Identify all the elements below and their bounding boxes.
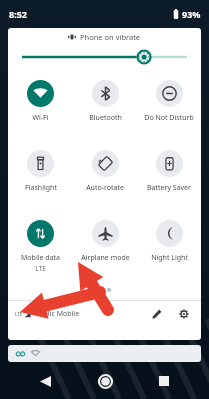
button[interactable]: LTE <box>15 309 80 319</box>
staticText: Do Not Disturb <box>144 113 194 123</box>
button[interactable]: Night Light <box>137 212 201 282</box>
staticText: LTE <box>35 264 46 273</box>
staticText: Auto-rotate <box>86 183 124 193</box>
staticText: 93% <box>182 8 201 20</box>
staticText: Bluetooth <box>89 113 122 123</box>
button[interactable]: Bluetooth <box>73 72 137 142</box>
staticText: Airplane mode <box>81 253 130 263</box>
staticText: Phone on vibrate <box>80 32 141 42</box>
staticText: Mobile data <box>21 253 60 263</box>
staticText: Flashlight <box>25 183 57 193</box>
button[interactable]: Phone on vibrate <box>8 28 201 46</box>
button[interactable]: Battery Saver <box>137 142 201 212</box>
button[interactable]: Flashlight <box>8 142 73 212</box>
button[interactable]: Airplane mode <box>73 212 137 282</box>
button[interactable]: Wi-Fi <box>8 72 73 142</box>
button[interactable]: Do Not Disturb <box>137 72 201 142</box>
button[interactable]: Recent apps <box>149 366 179 396</box>
button[interactable]: Auto-rotate <box>73 142 137 212</box>
staticText: Night Light <box>151 253 188 263</box>
staticText: 8:52 <box>9 8 27 20</box>
staticText: Wi-Fi <box>32 113 49 123</box>
button[interactable] <box>8 345 201 362</box>
button[interactable]: Mobile data <box>8 212 73 282</box>
staticText: Battery Saver <box>147 183 191 193</box>
button[interactable]: Back <box>30 366 60 396</box>
button[interactable]: Edit <box>147 304 167 324</box>
staticText: Public Mobile <box>35 309 80 319</box>
staticText: LTE <box>15 311 23 317</box>
button[interactable]: Home <box>90 366 120 396</box>
button[interactable]: Brightness <box>8 46 201 68</box>
button[interactable]: Settings <box>174 304 194 324</box>
